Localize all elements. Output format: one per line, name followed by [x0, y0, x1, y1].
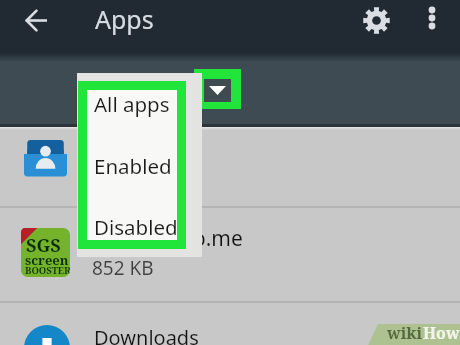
staticText: Enabled: [94, 152, 172, 180]
button[interactable]: More options: [414, 0, 450, 36]
staticText: wiki: [387, 322, 423, 344]
button[interactable]: Disabled: [78, 211, 186, 243]
staticText: o.me: [193, 224, 243, 253]
staticText: Downloads: [94, 324, 199, 345]
button[interactable]: Settings: [356, 0, 396, 40]
staticText: How: [423, 322, 460, 344]
button[interactable]: Back: [16, 0, 56, 40]
staticText: Apps: [95, 2, 154, 36]
staticText: 852 KB: [92, 255, 154, 281]
button[interactable]: Enabled: [78, 150, 186, 182]
staticText: All apps: [94, 90, 170, 118]
staticText: BOOSTER: [25, 264, 70, 277]
button[interactable]: Filter dropdown: [194, 69, 241, 109]
staticText: screen: [25, 251, 69, 269]
staticText: SGS: [26, 233, 61, 258]
button[interactable]: All apps: [78, 88, 186, 120]
staticText: Disabled: [94, 213, 178, 241]
